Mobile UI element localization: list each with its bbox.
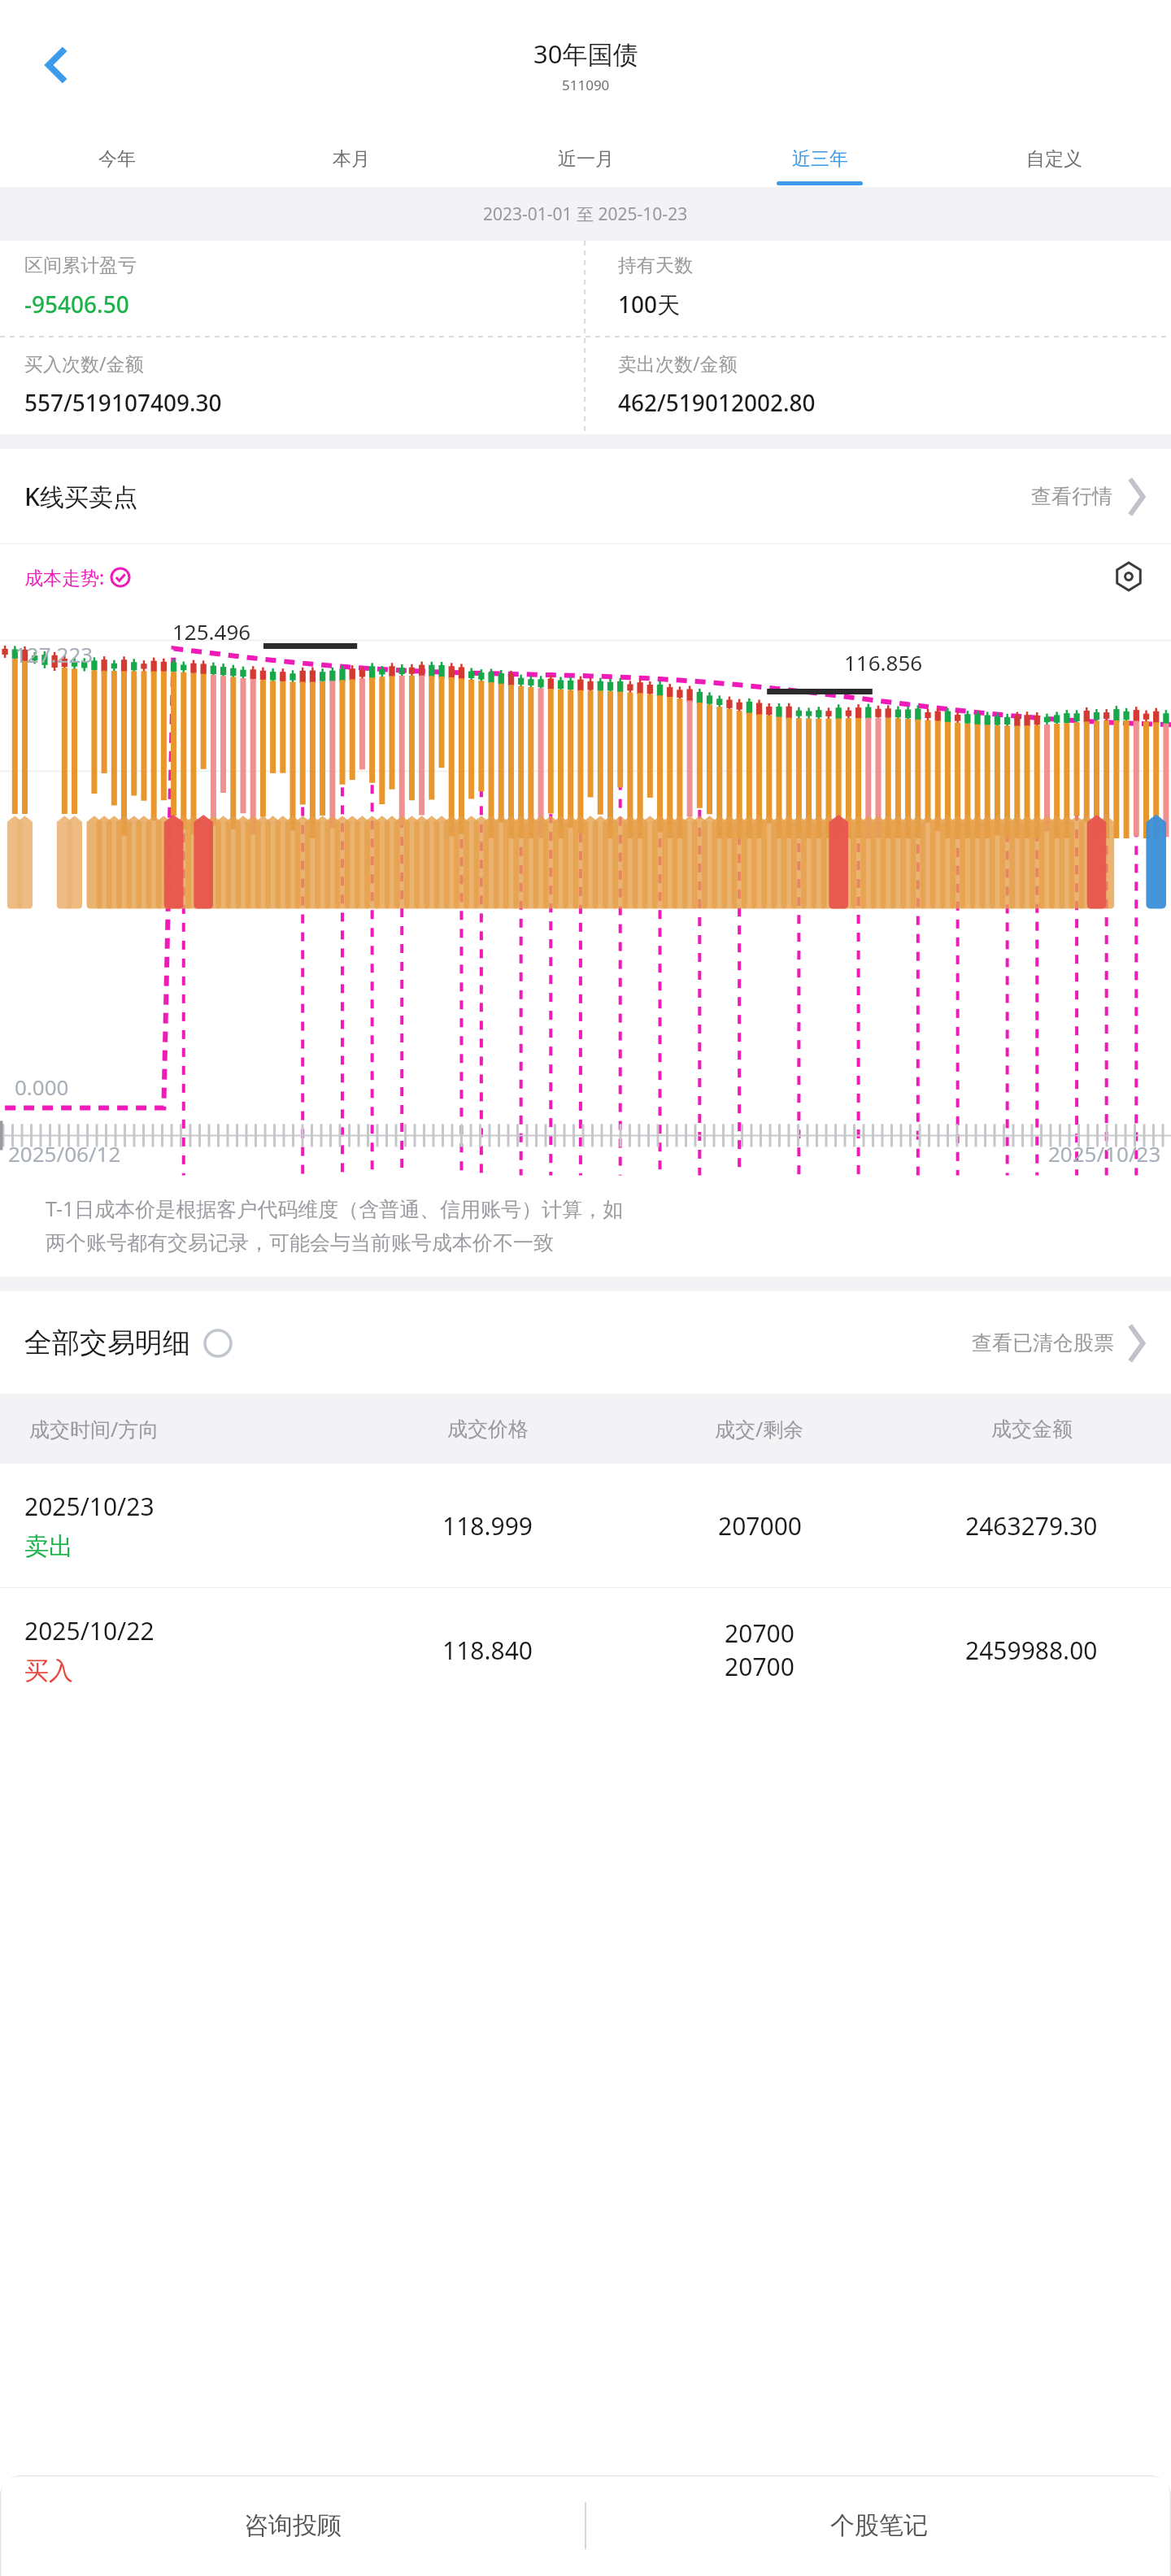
button[interactable]: 2025/10/22 bbox=[0, 1588, 1171, 1712]
button[interactable]: 本月 bbox=[234, 130, 468, 187]
staticText: 成交/剩余 bbox=[715, 1415, 804, 1442]
staticText: 成本走势: bbox=[24, 564, 105, 590]
staticText: 全部交易明细 bbox=[24, 1325, 190, 1360]
button[interactable]: 近一月 bbox=[468, 130, 703, 187]
staticText: 116.856 bbox=[844, 648, 923, 677]
staticText: 成交时间/方向 bbox=[29, 1415, 159, 1442]
staticText: 125.496 bbox=[172, 617, 251, 646]
staticText: 成交价格 bbox=[447, 1416, 529, 1442]
staticText: 2463279.30 bbox=[965, 1509, 1098, 1543]
button[interactable]: 成本走势: bbox=[24, 564, 131, 590]
staticText: 本月 bbox=[333, 147, 370, 171]
staticText: 118.999 bbox=[442, 1509, 533, 1543]
staticText: 118.840 bbox=[442, 1634, 533, 1667]
staticText: 462/519012002.80 bbox=[618, 387, 816, 418]
staticText: K线买卖点 bbox=[24, 480, 137, 513]
button[interactable]: Chart settings bbox=[1111, 559, 1147, 594]
button[interactable]: 自定义 bbox=[937, 130, 1171, 187]
staticText: 20700 20700 bbox=[725, 1617, 794, 1683]
staticText: 557/519107409.30 bbox=[24, 387, 222, 418]
staticText: 207000 bbox=[718, 1509, 802, 1543]
staticText: 买入 bbox=[24, 1656, 73, 1686]
staticText: 2025/10/23 bbox=[24, 1490, 155, 1523]
button[interactable]: 今年 bbox=[0, 130, 234, 187]
staticText: 100天 bbox=[618, 289, 681, 320]
staticText: 近三年 bbox=[792, 147, 848, 171]
button[interactable]: 2025/10/23 bbox=[0, 1464, 1171, 1587]
staticText: 2459988.00 bbox=[965, 1634, 1098, 1667]
button[interactable]: 全部交易明细 bbox=[24, 1325, 233, 1360]
staticText: 持有天数 bbox=[618, 254, 693, 277]
staticText: 成交金额 bbox=[991, 1416, 1073, 1442]
staticText: 2025/10/22 bbox=[24, 1614, 155, 1647]
button[interactable]: 查看行情 bbox=[1026, 479, 1147, 514]
staticText: 2023-01-01 至 2025-10-23 bbox=[483, 202, 688, 226]
staticText: 自定义 bbox=[1026, 147, 1082, 171]
staticText: 0.000 bbox=[15, 1073, 69, 1101]
staticText: 127.223 bbox=[15, 640, 94, 668]
staticText: 今年 bbox=[98, 147, 136, 171]
staticText: 两个账号都有交易记录，可能会与当前账号成本价不一致 bbox=[46, 1230, 554, 1255]
button[interactable]: Back bbox=[23, 34, 85, 96]
button[interactable]: 咨询投顾 bbox=[0, 2475, 585, 2576]
staticText: 咨询投顾 bbox=[244, 2510, 342, 2541]
staticText: 卖出次数/金额 bbox=[618, 350, 738, 376]
staticText: T-1日成本价是根据客户代码维度（含普通、信用账号）计算，如 bbox=[46, 1194, 624, 1222]
staticText: 2025/06/12 bbox=[8, 1139, 121, 1168]
staticText: 查看行情 bbox=[1031, 484, 1112, 509]
staticText: 个股笔记 bbox=[830, 2510, 928, 2541]
staticText: 买入次数/金额 bbox=[24, 350, 144, 376]
staticText: 查看已清仓股票 bbox=[972, 1330, 1114, 1355]
staticText: -95406.50 bbox=[24, 289, 129, 320]
staticText: 511090 bbox=[562, 76, 610, 94]
staticText: 30年国债 bbox=[533, 37, 638, 71]
button[interactable]: 个股笔记 bbox=[586, 2475, 1171, 2576]
button[interactable]: 近三年 bbox=[703, 130, 937, 187]
staticText: 区间累计盈亏 bbox=[24, 254, 137, 277]
staticText: 近一月 bbox=[558, 147, 614, 171]
staticText: 2025/10/23 bbox=[1048, 1139, 1161, 1168]
button[interactable]: 查看已清仓股票 bbox=[967, 1325, 1147, 1360]
staticText: 卖出 bbox=[24, 1531, 73, 1562]
